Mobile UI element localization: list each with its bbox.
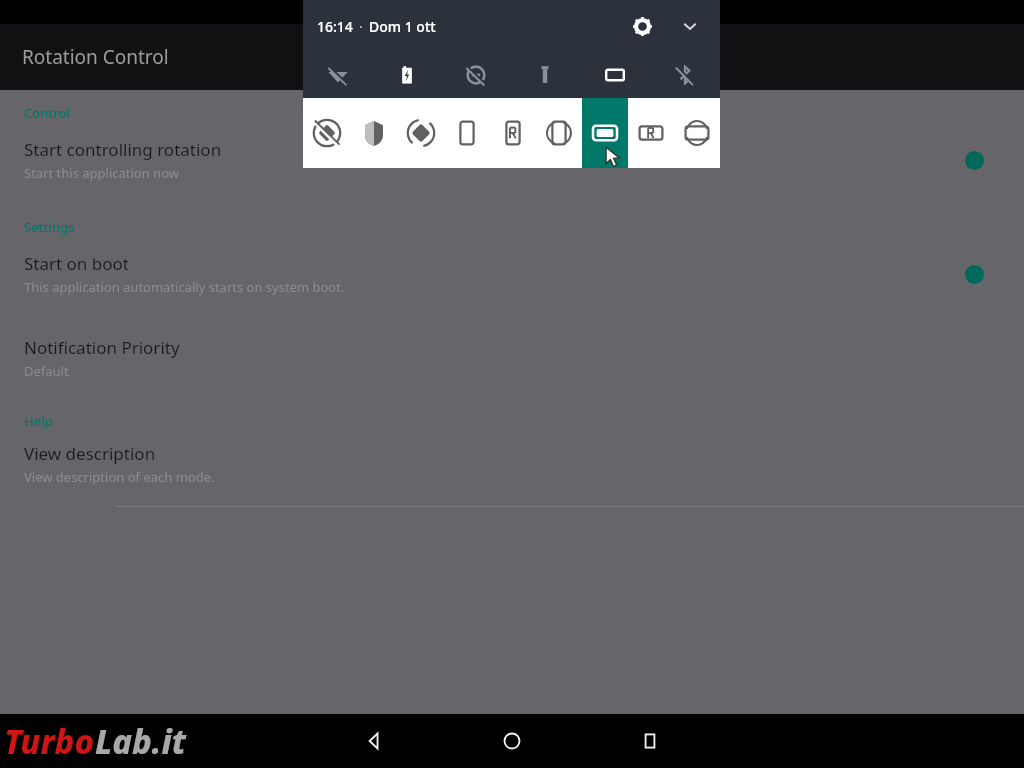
button[interactable]: Portrait sensor — [536, 98, 582, 168]
button[interactable]: Rotation locked — [580, 52, 650, 98]
button[interactable]: Back — [347, 714, 401, 768]
staticText: Control — [24, 104, 71, 122]
button[interactable]: Notification Priority — [0, 326, 1024, 384]
button[interactable]: Rotation off — [303, 98, 350, 168]
button[interactable]: Bluetooth off — [650, 52, 720, 98]
button[interactable]: Reverse portrait — [490, 98, 536, 168]
staticText: 16:14 — [317, 17, 353, 36]
staticText: View description of each mode. — [24, 468, 215, 486]
staticText: Turbo — [4, 719, 95, 764]
button[interactable]: Battery charging — [372, 52, 441, 98]
staticText: Help — [24, 412, 53, 430]
staticText: Start controlling rotation — [24, 138, 222, 161]
button[interactable]: Do not disturb off — [441, 52, 510, 98]
button[interactable]: Start on boot — [0, 238, 1024, 304]
staticText: This application automatically starts on… — [24, 278, 345, 296]
staticText: Start this application now — [24, 164, 179, 182]
button[interactable]: Expand — [670, 6, 710, 46]
staticText: Dom 1 ott — [369, 17, 436, 36]
staticText: Rotation Control — [22, 44, 169, 70]
staticText: Settings — [24, 218, 75, 236]
staticText: Start on boot — [24, 252, 129, 275]
staticText: Notification Priority — [24, 336, 180, 359]
button[interactable]: Wi-Fi off — [303, 52, 372, 98]
button[interactable]: Sensor rotation — [397, 98, 444, 168]
button[interactable]: Recents — [623, 714, 677, 768]
button[interactable]: Landscape sensor — [674, 98, 720, 168]
button[interactable]: Toggle Start controlling rotation — [948, 134, 1000, 186]
button[interactable]: Portrait — [444, 98, 490, 168]
button[interactable]: Toggle Start on boot — [948, 248, 1000, 300]
button[interactable]: Settings — [622, 6, 662, 46]
button[interactable]: Home — [485, 714, 539, 768]
button[interactable]: Start controlling rotation — [0, 124, 1024, 190]
button[interactable]: Auto rotate — [350, 98, 397, 168]
button[interactable]: Landscape — [582, 98, 628, 168]
staticText: View description — [24, 442, 156, 465]
button[interactable]: Flashlight — [510, 52, 580, 98]
staticText: Default — [24, 362, 69, 380]
staticText: Lab.it — [95, 719, 187, 764]
staticText: · — [359, 17, 363, 36]
button[interactable]: View description — [0, 432, 1024, 490]
button[interactable]: Reverse landscape — [628, 98, 674, 168]
